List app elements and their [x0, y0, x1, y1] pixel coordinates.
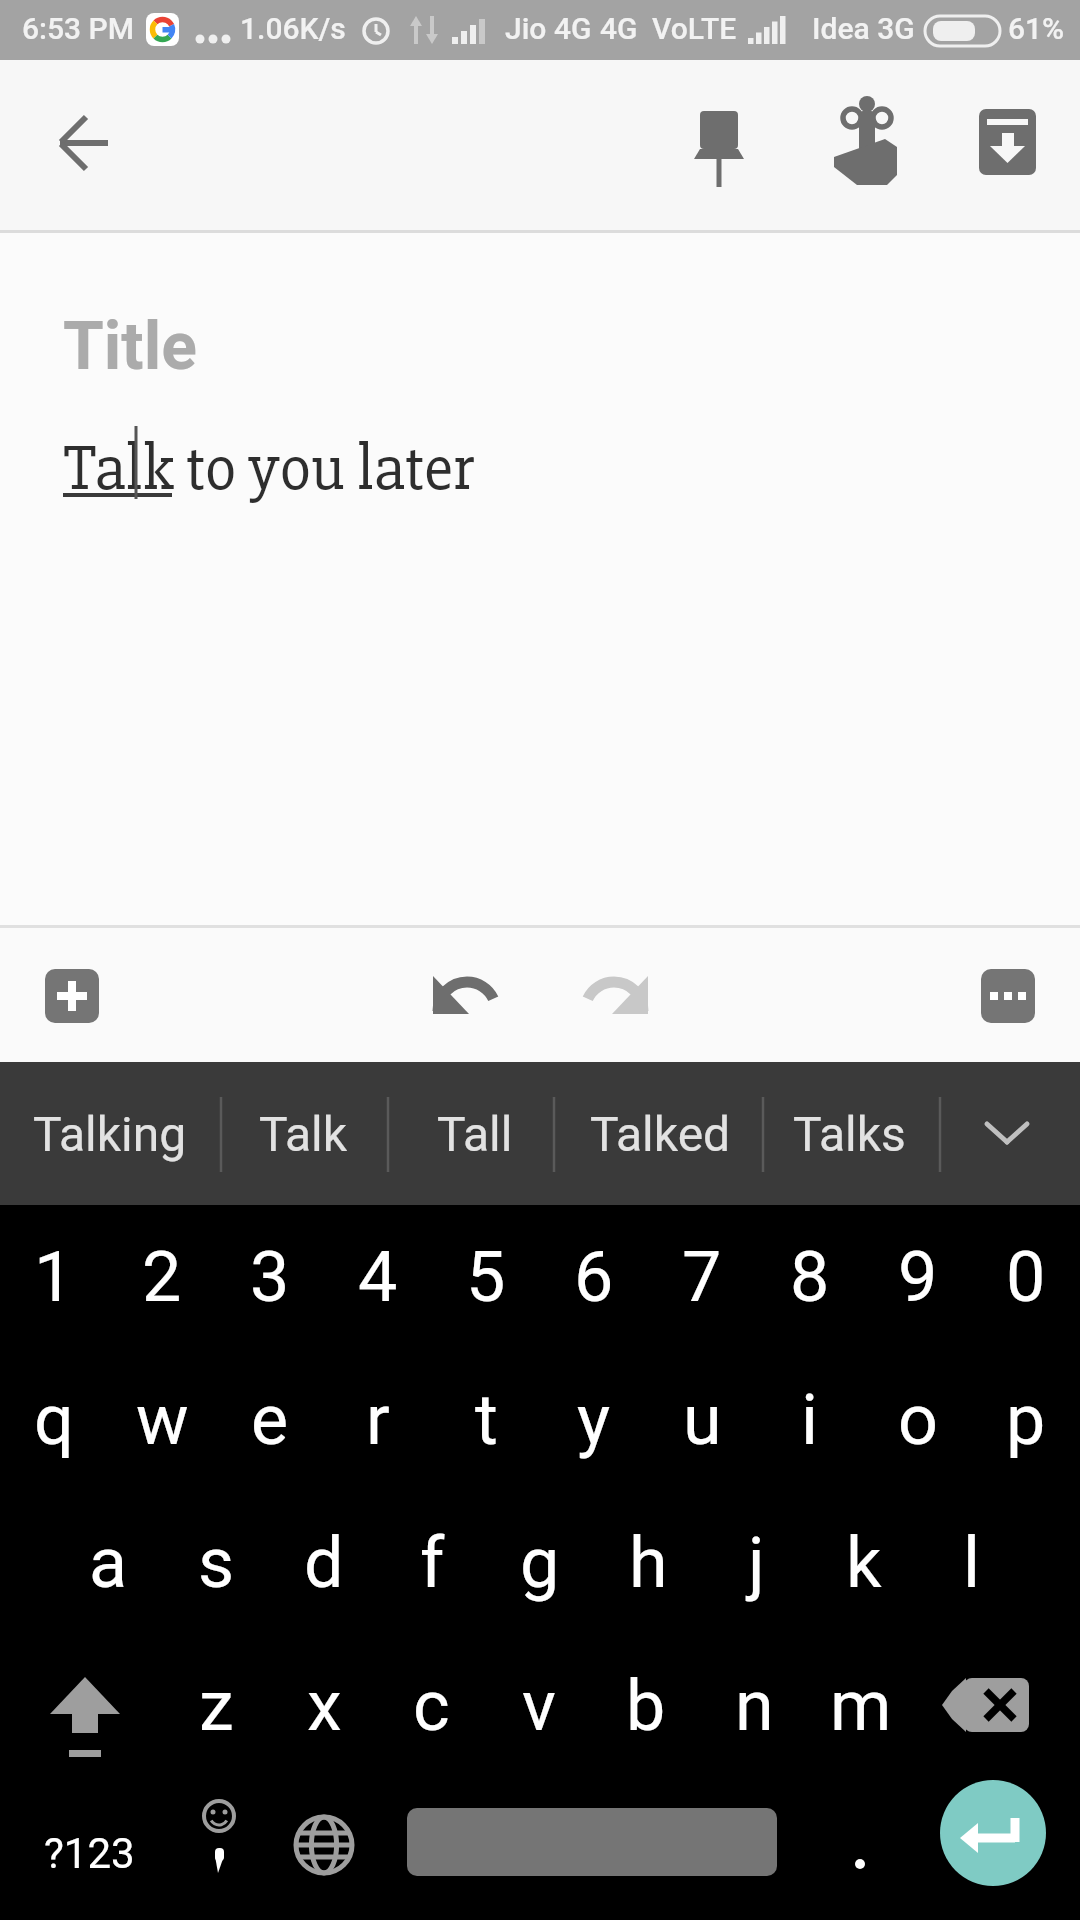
button[interactable]: m: [807, 1634, 915, 1777]
button[interactable]: 7: [648, 1205, 756, 1348]
button[interactable]: f: [378, 1491, 486, 1634]
staticText: e: [251, 1379, 289, 1461]
staticText: 1.06K/s: [240, 11, 346, 46]
button[interactable]: q: [0, 1348, 108, 1491]
button[interactable]: 2: [108, 1205, 216, 1348]
button[interactable]: x: [270, 1634, 378, 1777]
staticText: c: [413, 1665, 450, 1747]
button[interactable]: [407, 1808, 777, 1876]
button[interactable]: n: [700, 1634, 808, 1777]
button[interactable]: l: [918, 1491, 1026, 1634]
button[interactable]: b: [592, 1634, 700, 1777]
button[interactable]: j: [702, 1491, 810, 1634]
staticText: Idea 3G: [812, 11, 915, 46]
button[interactable]: [45, 969, 99, 1023]
button[interactable]: 9: [864, 1205, 972, 1348]
staticText: Talked: [590, 1106, 731, 1162]
staticText: 4G: [600, 11, 638, 46]
button[interactable]: o: [864, 1348, 972, 1491]
button[interactable]: [24, 1677, 146, 1797]
staticText: 6:53 PM: [22, 11, 135, 46]
button[interactable]: a: [54, 1491, 162, 1634]
button[interactable]: w: [108, 1348, 216, 1491]
staticText: 5: [466, 1236, 506, 1318]
button[interactable]: k: [810, 1491, 918, 1634]
button[interactable]: [959, 1086, 1055, 1182]
staticText: i: [801, 1379, 819, 1461]
staticText: w: [136, 1379, 189, 1461]
button[interactable]: c: [377, 1634, 485, 1777]
button[interactable]: Tall: [370, 1062, 580, 1205]
button[interactable]: 3: [216, 1205, 324, 1348]
staticText: 61%: [1008, 11, 1065, 46]
button[interactable]: u: [648, 1348, 756, 1491]
button[interactable]: [671, 95, 767, 191]
button[interactable]: 5: [432, 1205, 540, 1348]
button[interactable]: Talk: [198, 1062, 408, 1205]
staticText: v: [522, 1665, 556, 1747]
staticText: Talks: [793, 1106, 906, 1162]
button[interactable]: Talked: [555, 1062, 765, 1205]
button[interactable]: d: [270, 1491, 378, 1634]
staticText: 3: [250, 1236, 290, 1318]
button[interactable]: r: [324, 1348, 432, 1491]
button[interactable]: [36, 95, 132, 191]
staticText: l: [963, 1522, 981, 1604]
button[interactable]: g: [486, 1491, 594, 1634]
staticText: m: [830, 1665, 892, 1747]
button[interactable]: [419, 975, 515, 1035]
staticText: k: [846, 1522, 882, 1604]
button[interactable]: e: [216, 1348, 324, 1491]
button[interactable]: [806, 1788, 914, 1918]
staticText: Talk: [259, 1106, 348, 1162]
button[interactable]: [566, 975, 662, 1035]
button[interactable]: p: [972, 1348, 1080, 1491]
staticText: 2: [142, 1236, 182, 1318]
staticText: n: [735, 1665, 774, 1747]
button[interactable]: v: [485, 1634, 593, 1777]
button[interactable]: t: [432, 1348, 540, 1491]
button[interactable]: h: [594, 1491, 702, 1634]
button[interactable]: [270, 1788, 378, 1918]
button[interactable]: [959, 95, 1055, 191]
staticText: g: [520, 1522, 560, 1604]
staticText: a: [89, 1522, 128, 1604]
staticText: s: [198, 1522, 235, 1604]
staticText: Title: [63, 308, 197, 385]
staticText: 8: [790, 1236, 830, 1318]
button[interactable]: Talks: [744, 1062, 954, 1205]
staticText: 1: [34, 1236, 74, 1318]
staticText: j: [748, 1522, 765, 1604]
staticText: b: [626, 1665, 666, 1747]
staticText: VoLTE: [652, 11, 737, 46]
button[interactable]: [981, 969, 1035, 1023]
staticText: Tall: [437, 1106, 513, 1162]
staticText: ?123: [44, 1829, 135, 1878]
staticText: 0: [1006, 1236, 1046, 1318]
staticText: d: [304, 1522, 344, 1604]
button[interactable]: [817, 95, 913, 191]
button[interactable]: Talking: [5, 1062, 215, 1205]
button[interactable]: 0: [972, 1205, 1080, 1348]
staticText: p: [1006, 1379, 1046, 1461]
button[interactable]: [940, 1780, 1046, 1886]
staticText: q: [34, 1379, 74, 1461]
button[interactable]: 4: [324, 1205, 432, 1348]
staticText: o: [898, 1379, 938, 1461]
button[interactable]: [942, 1678, 1047, 1758]
staticText: t: [475, 1379, 498, 1461]
button[interactable]: s: [162, 1491, 270, 1634]
button[interactable]: 6: [540, 1205, 648, 1348]
button[interactable]: z: [162, 1634, 270, 1777]
staticText: r: [366, 1379, 390, 1461]
staticText: u: [683, 1379, 722, 1461]
staticText: Jio 4G: [505, 11, 592, 46]
button[interactable]: 8: [756, 1205, 864, 1348]
staticText: y: [577, 1379, 611, 1461]
button[interactable]: ?123: [24, 1788, 154, 1918]
staticText: 7: [682, 1236, 722, 1318]
button[interactable]: 1: [0, 1205, 108, 1348]
button[interactable]: y: [540, 1348, 648, 1491]
button[interactable]: i: [756, 1348, 864, 1491]
button[interactable]: [165, 1788, 273, 1918]
